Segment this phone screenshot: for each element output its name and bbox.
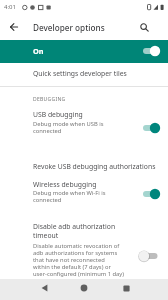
button[interactable] — [6, 19, 22, 35]
button[interactable] — [74, 279, 94, 297]
button[interactable]: On — [0, 40, 168, 63]
staticText: On — [33, 46, 44, 56]
button[interactable] — [136, 19, 152, 35]
staticText: Debug mode when Wi-Fi is — [33, 189, 106, 197]
staticText: connected — [33, 127, 62, 135]
staticText: Developer options — [33, 22, 105, 33]
staticText: within the default (7 days) or — [33, 263, 111, 271]
button[interactable]: USB debugging — [0, 107, 168, 143]
staticText: Wireless debugging — [33, 180, 97, 189]
staticText: Revoke USB debugging authorizations — [33, 162, 156, 171]
staticText: USB debugging — [33, 110, 83, 119]
staticText: Disable automatic revocation of — [33, 242, 120, 250]
staticText: Debug mode when USB is — [33, 120, 104, 128]
staticText: user-configured (minimum 1 day) — [33, 270, 125, 278]
staticText: DEBUGGING — [33, 96, 66, 103]
staticText: Quick settings developer tiles — [33, 69, 127, 78]
button[interactable] — [116, 279, 136, 297]
button[interactable]: Quick settings developer tiles — [0, 63, 168, 86]
staticText: adb authorizations for systems — [33, 249, 118, 257]
staticText: 4:01 — [4, 3, 16, 11]
button[interactable]: Revoke USB debugging authorizations — [0, 143, 168, 177]
staticText: connected — [33, 196, 62, 204]
staticText: timeout — [33, 231, 59, 240]
staticText: Disable adb authorization — [33, 222, 116, 231]
staticText: that have not reconnected — [33, 256, 105, 264]
button[interactable]: Disable adb authorization — [0, 212, 168, 281]
button[interactable] — [34, 279, 54, 297]
button[interactable]: Wireless debugging — [0, 177, 168, 212]
